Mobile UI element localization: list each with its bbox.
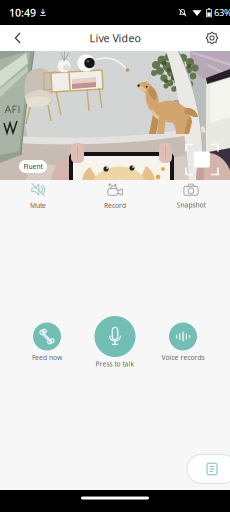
button[interactable]: Voice records: [147, 305, 219, 367]
staticText: Snapshot: [176, 201, 205, 209]
button[interactable]: Mute: [6, 179, 70, 213]
button[interactable]: Feed now: [11, 305, 83, 367]
staticText: Press to talk: [95, 360, 134, 368]
staticText: 63%: [214, 6, 230, 19]
button[interactable]: Settings: [200, 26, 224, 50]
button[interactable]: Record: [83, 179, 147, 213]
staticText: Voice records: [161, 353, 204, 362]
button[interactable]: Back: [6, 26, 30, 50]
staticText: Mute: [30, 201, 46, 210]
staticText: Feed now: [32, 353, 62, 362]
staticText: Record: [104, 201, 126, 210]
button[interactable]: Press to talk: [79, 305, 151, 367]
button[interactable]: Snapshot: [159, 179, 223, 213]
staticText: Live Video: [89, 31, 140, 45]
staticText: 10:49: [9, 5, 36, 20]
staticText: Fluent: [23, 162, 42, 171]
button[interactable]: Event log: [187, 454, 230, 483]
